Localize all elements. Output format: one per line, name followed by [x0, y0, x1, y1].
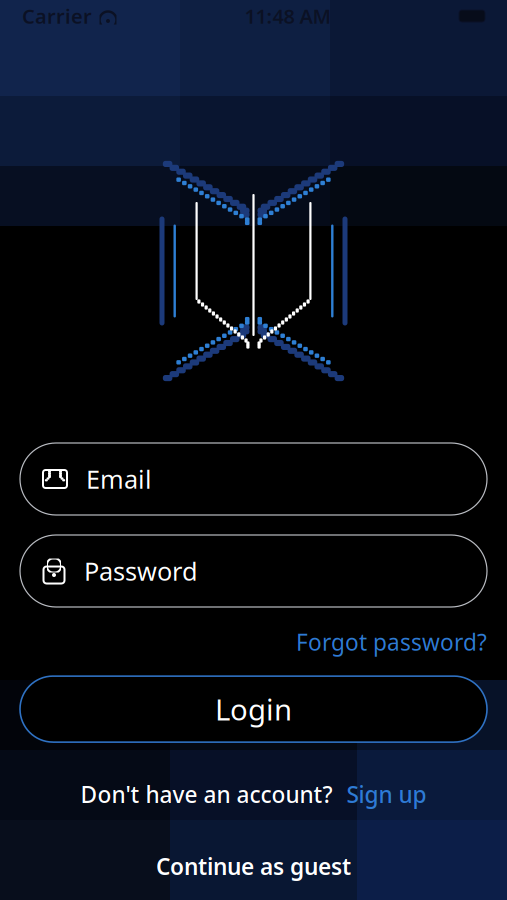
staticText: Email: [86, 462, 152, 496]
staticText: Login: [215, 690, 292, 729]
staticText: 11:48 AM: [244, 3, 331, 29]
button[interactable]: Continue as guest: [136, 845, 371, 887]
staticText: Password: [84, 554, 198, 588]
button[interactable]: Sign up: [332, 775, 426, 813]
staticText: Forgot password?: [296, 627, 487, 657]
button[interactable]: Forgot password?: [296, 623, 487, 661]
button[interactable]: Login: [20, 676, 487, 742]
button[interactable]: Email: [20, 443, 487, 515]
staticText: Carrier: [22, 3, 92, 29]
button[interactable]: Password: [20, 535, 487, 607]
staticText: Don't have an account?: [80, 779, 332, 809]
staticText: Continue as guest: [156, 851, 351, 881]
staticText: Sign up: [346, 779, 426, 809]
